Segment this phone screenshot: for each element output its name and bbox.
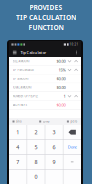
button[interactable]: TIP AMOUNT (9, 74, 81, 83)
button[interactable]: Increase (74, 95, 78, 98)
button[interactable]: Increase (74, 68, 78, 71)
button[interactable]: sino (11, 118, 24, 124)
staticText: NUMBER OF PEOPLE (12, 94, 37, 98)
staticText: EACH PAYS (12, 103, 26, 107)
staticText: 10:21 (70, 43, 79, 46)
staticText: como (43, 120, 50, 123)
staticText: TIP AMOUNT (12, 77, 28, 80)
button[interactable]: pero (65, 118, 79, 124)
button[interactable]: NUMBER OF PEOPLE (9, 92, 81, 101)
staticText: sino (16, 120, 22, 123)
button[interactable]: TOTAL AMOUNT (9, 83, 81, 92)
staticText: $0.00 (56, 85, 65, 90)
button[interactable]: 1 (9, 125, 27, 139)
staticText: 4 (16, 143, 19, 151)
staticText: 7 (16, 158, 19, 165)
button[interactable]: 4 (9, 140, 27, 154)
button[interactable]: More options (74, 49, 78, 55)
staticText: $0.00 (56, 76, 65, 81)
button[interactable]: EACH PAYS (9, 101, 81, 110)
staticText: 1 (16, 129, 19, 136)
button[interactable] (63, 125, 81, 139)
staticText: 9 (53, 158, 56, 165)
staticText: 0 (34, 173, 37, 180)
button[interactable]: 7 (9, 155, 27, 169)
staticText: $0.00 (56, 58, 65, 64)
button[interactable]: 0 (27, 170, 45, 184)
staticText: Done (68, 144, 77, 150)
button[interactable]: Decrease (68, 95, 71, 98)
button[interactable] (45, 170, 63, 184)
staticText: 2 (34, 129, 37, 136)
button[interactable] (63, 155, 81, 169)
button[interactable]: como (38, 118, 51, 124)
button[interactable]: 2 (27, 125, 45, 139)
button[interactable]: 3 (45, 125, 63, 139)
button[interactable]: Increase (74, 60, 78, 63)
staticText: $0.00 (56, 102, 65, 108)
staticText: 1 (63, 93, 65, 99)
button[interactable]: Decrease (68, 68, 71, 71)
staticText: TOTAL AMOUNT (12, 86, 31, 89)
staticText: 6 (53, 143, 56, 151)
staticText: TIP PERCENTAGE (12, 68, 33, 72)
button[interactable]: BILL AMOUNT (9, 57, 81, 66)
staticText: pero (70, 120, 77, 123)
staticText: PROVIDES (29, 3, 62, 12)
button[interactable]: Decrease (68, 60, 71, 63)
staticText: 5 (34, 143, 37, 151)
button[interactable]: Done (63, 140, 81, 154)
button[interactable]: 5 (27, 140, 45, 154)
staticText: BILL AMOUNT (12, 59, 29, 63)
button[interactable]: TIP PERCENTAGE (9, 66, 81, 75)
button[interactable] (63, 170, 81, 184)
staticText: 8 (34, 158, 37, 165)
button[interactable]: 6 (45, 140, 63, 154)
button[interactable]: 8 (27, 155, 45, 169)
button[interactable] (9, 170, 27, 184)
staticText: 3 (53, 129, 56, 136)
staticText: FUNCTION (28, 23, 63, 32)
staticText: 15% (58, 67, 65, 73)
staticText: TIP CALCULATION (16, 13, 76, 22)
staticText: Tip Calculator (20, 50, 46, 55)
button[interactable]: Menu (12, 49, 17, 55)
button[interactable]: 9 (45, 155, 63, 169)
